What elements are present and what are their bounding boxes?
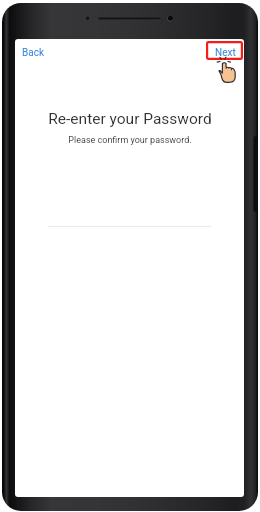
button[interactable]: Back (18, 43, 48, 63)
other: Tap here (217, 60, 237, 84)
staticText: Please confirm your password. (68, 135, 192, 146)
button[interactable]: Next (211, 43, 240, 63)
other: Highlight (206, 41, 243, 60)
staticText: Back (22, 47, 44, 59)
staticText: Re-enter your Password (48, 110, 212, 128)
staticText: Next (215, 47, 236, 59)
